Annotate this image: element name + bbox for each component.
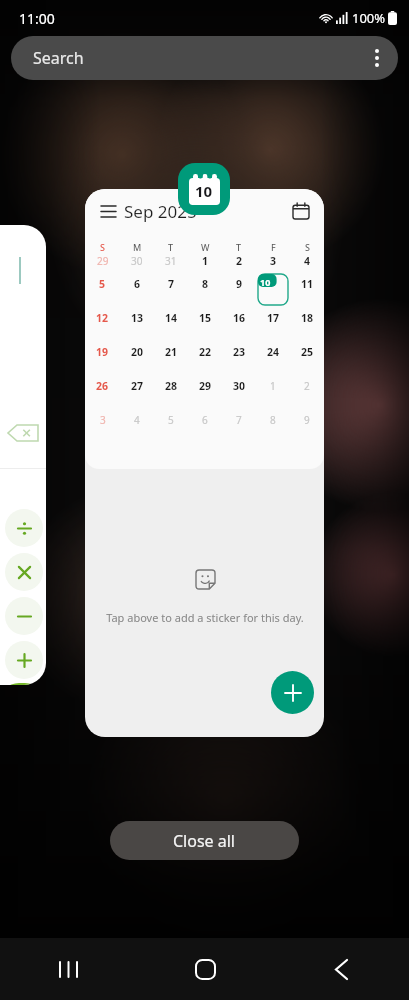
button[interactable]: 24 <box>256 344 290 378</box>
button[interactable]: More options <box>356 37 398 79</box>
button[interactable]: 25 <box>290 344 324 378</box>
button[interactable]: 27 <box>120 378 154 412</box>
button[interactable]: 6 <box>120 276 154 310</box>
staticText: F <box>271 241 276 253</box>
staticText: 12 <box>96 311 109 325</box>
staticText: 11 <box>301 277 314 291</box>
button[interactable]: 23 <box>222 344 256 378</box>
staticText: T <box>236 241 242 253</box>
staticText: 100% <box>352 9 386 27</box>
button[interactable]: 31 <box>154 254 188 276</box>
button[interactable]: 20 <box>120 344 154 378</box>
staticText: Tap above to add a sticker for this day. <box>106 610 304 625</box>
button[interactable]: Recent apps <box>0 938 137 1000</box>
button[interactable]: 2 <box>222 254 256 276</box>
staticText: 20 <box>131 345 144 359</box>
button[interactable]: 17 <box>256 310 290 344</box>
button[interactable]: Go to today <box>287 197 315 225</box>
button[interactable]: 6 <box>188 412 222 446</box>
button[interactable]: Add <box>5 641 43 679</box>
button[interactable]: 10 <box>256 276 290 310</box>
staticText: 6 <box>202 413 208 427</box>
button[interactable]: Equals <box>0 683 45 685</box>
button[interactable]: 5 <box>85 276 120 310</box>
button[interactable]: 9 <box>222 276 256 310</box>
button[interactable]: 29 <box>85 254 120 276</box>
button[interactable]: Home <box>137 938 273 1000</box>
button[interactable]: 2 <box>290 378 324 412</box>
staticText: 8 <box>202 277 209 291</box>
other: Calendar app <box>178 163 230 215</box>
button[interactable]: 11 <box>290 276 324 310</box>
staticText: W <box>201 241 210 253</box>
button[interactable]: 1 <box>256 378 290 412</box>
staticText: 10 <box>260 276 271 288</box>
button[interactable]: Multiply <box>5 553 43 591</box>
staticText: 19 <box>96 345 109 359</box>
button[interactable]: 13 <box>120 310 154 344</box>
button[interactable]: Menu <box>85 189 324 737</box>
staticText: 29 <box>97 254 109 268</box>
button[interactable]: 7 <box>154 276 188 310</box>
staticText: 1 <box>270 379 276 393</box>
button[interactable]: Divide <box>0 225 46 685</box>
staticText: 25 <box>301 345 314 359</box>
button[interactable]: 28 <box>154 378 188 412</box>
button[interactable]: 4 <box>290 254 324 276</box>
staticText: 23 <box>233 345 246 359</box>
button[interactable]: 7 <box>222 412 256 446</box>
staticText: 16 <box>233 311 246 325</box>
button[interactable]: Menu <box>93 196 123 226</box>
staticText: 15 <box>199 311 212 325</box>
staticText: 17 <box>267 311 280 325</box>
staticText: M <box>133 241 142 253</box>
staticText: 3 <box>270 254 277 268</box>
button[interactable]: 18 <box>290 310 324 344</box>
staticText: 29 <box>199 379 212 393</box>
button[interactable]: 12 <box>85 310 120 344</box>
button[interactable]: Add sticker <box>185 559 225 599</box>
button[interactable]: Subtract <box>5 597 43 635</box>
button[interactable]: 1 <box>188 254 222 276</box>
button[interactable]: Search <box>11 36 398 80</box>
button[interactable]: 8 <box>256 412 290 446</box>
button[interactable]: 5 <box>154 412 188 446</box>
button[interactable]: Add event <box>271 671 314 714</box>
button[interactable]: 30 <box>222 378 256 412</box>
button[interactable]: 14 <box>154 310 188 344</box>
button[interactable]: Back <box>273 938 409 1000</box>
staticText: 26 <box>96 379 109 393</box>
staticText: Search <box>33 47 84 69</box>
button[interactable]: 4 <box>120 412 154 446</box>
staticText: 1 <box>202 254 209 268</box>
staticText: S <box>305 241 310 253</box>
button[interactable]: 19 <box>85 344 120 378</box>
button[interactable]: 26 <box>85 378 120 412</box>
button[interactable]: 15 <box>188 310 222 344</box>
button[interactable]: 16 <box>222 310 256 344</box>
button[interactable]: 3 <box>256 254 290 276</box>
button[interactable]: Close all <box>110 821 299 860</box>
staticText: Sep 2025 <box>124 200 197 223</box>
button[interactable]: 21 <box>154 344 188 378</box>
button[interactable]: 22 <box>188 344 222 378</box>
button[interactable]: 3 <box>85 412 120 446</box>
staticText: T <box>168 241 174 253</box>
button[interactable]: Divide <box>5 509 43 547</box>
staticText: 13 <box>131 311 144 325</box>
staticText: 2 <box>236 254 243 268</box>
staticText: 2 <box>304 379 310 393</box>
staticText: 3 <box>100 413 106 427</box>
staticText: 11:00 <box>19 9 55 28</box>
staticText: 9 <box>236 277 243 291</box>
button[interactable]: 8 <box>188 276 222 310</box>
button[interactable]: 30 <box>120 254 154 276</box>
button[interactable]: 29 <box>188 378 222 412</box>
staticText: 30 <box>131 254 143 268</box>
staticText: 5 <box>99 277 106 291</box>
staticText: 7 <box>168 277 175 291</box>
staticText: 10 <box>195 181 213 201</box>
staticText: 31 <box>165 254 177 268</box>
button[interactable]: 9 <box>290 412 324 446</box>
staticText: 27 <box>131 379 144 393</box>
